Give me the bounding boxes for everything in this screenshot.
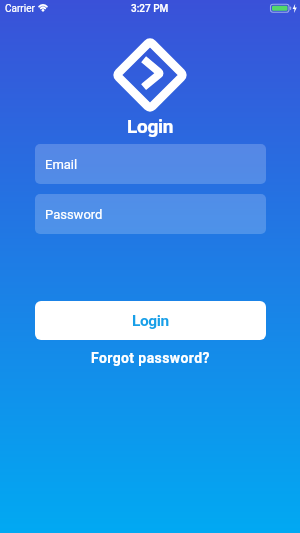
staticText: 3:27 PM [131,3,169,15]
button[interactable]: Login [35,301,266,340]
button[interactable]: Forgot password? [91,350,210,366]
button[interactable]: Email [35,144,266,184]
staticText: Password [45,207,103,222]
staticText: Login [127,115,174,137]
staticText: Carrier [5,3,35,15]
staticText: Login [132,312,169,330]
button[interactable]: Password [35,194,266,234]
staticText: Email [45,157,78,172]
